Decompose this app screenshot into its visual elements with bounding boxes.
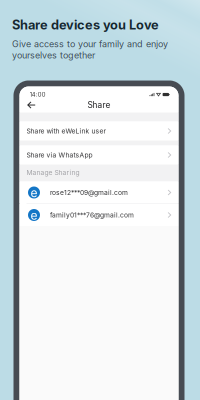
staticText: Share [87,100,110,110]
staticText: Manage Sharing [26,168,79,176]
staticText: Share with eWeLink user [26,127,106,135]
button[interactable]: Share via WhatsApp [19,145,178,164]
staticText: Share via WhatsApp [26,151,92,159]
button[interactable]: Share with eWeLink user [19,121,178,140]
staticText: Share devices you Love [12,17,159,32]
staticText: rose12***09@gmail.com [50,188,128,197]
button[interactable]: Back [22,97,40,112]
button[interactable]: e [19,204,178,226]
staticText: e [30,208,37,222]
staticText: family01***76@gmail.com [50,211,134,219]
button[interactable]: e [19,181,178,203]
staticText: 14:00 [30,91,46,98]
staticText: e [30,185,37,200]
staticText: yourselves together [12,50,95,61]
staticText: Give access to your family and enjoy [12,38,168,49]
